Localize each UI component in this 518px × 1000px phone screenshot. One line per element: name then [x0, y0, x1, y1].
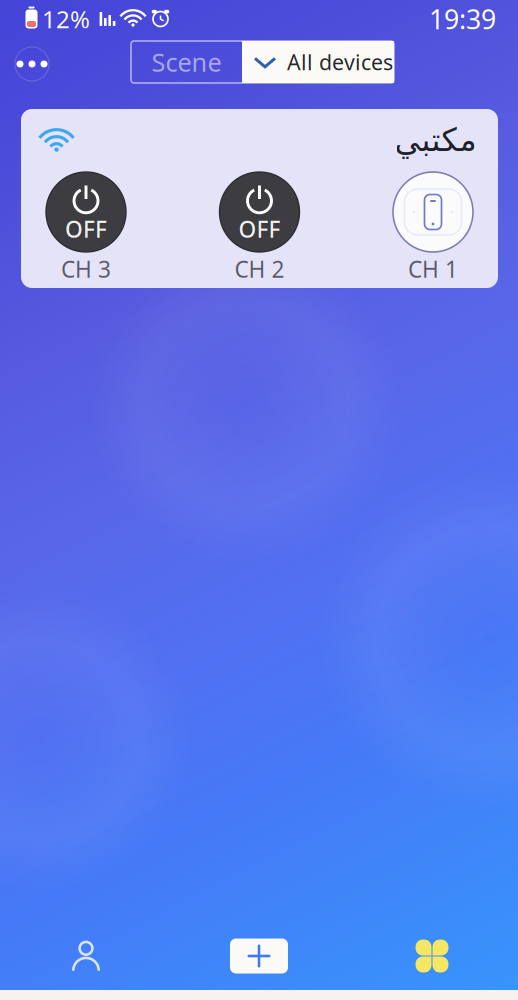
staticText: 19:39 — [429, 1, 496, 37]
button[interactable]: Scenes — [382, 924, 482, 988]
button[interactable]: Scene — [131, 41, 242, 83]
staticText: 12% — [42, 3, 90, 35]
button[interactable]: OFF — [40, 172, 132, 284]
button[interactable]: Profile — [36, 924, 136, 988]
button[interactable]: Add device — [230, 938, 288, 973]
staticText: CH 2 — [234, 254, 284, 284]
button[interactable]: More options — [10, 42, 54, 86]
staticText: OFF — [65, 214, 107, 244]
staticText: CH 3 — [61, 254, 111, 284]
button[interactable]: CH 1 — [387, 172, 479, 284]
staticText: CH 1 — [408, 254, 458, 284]
staticText: All devices — [287, 48, 393, 76]
staticText: OFF — [238, 214, 280, 244]
staticText: مكتبي — [394, 122, 476, 158]
button[interactable]: All devices — [242, 41, 394, 83]
staticText: Scene — [151, 45, 221, 79]
button[interactable]: OFF — [213, 172, 305, 284]
